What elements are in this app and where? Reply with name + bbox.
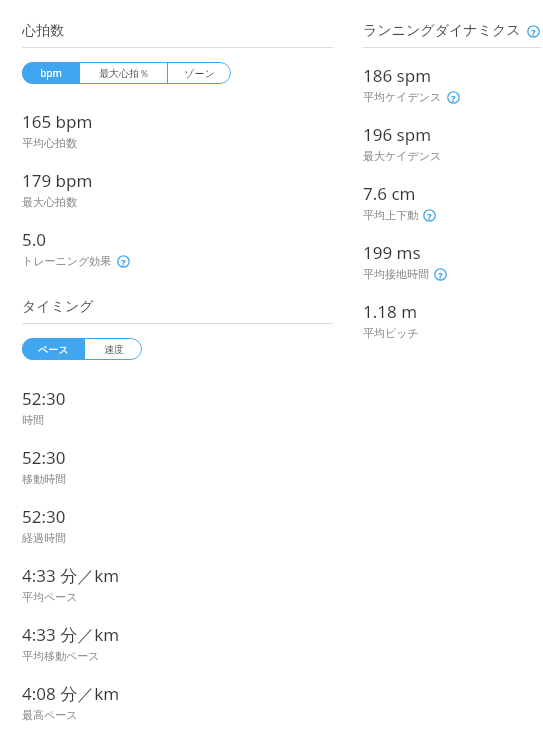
staticText: 平均心拍数 xyxy=(22,136,77,150)
staticText: 平均上下動 xyxy=(363,208,418,222)
staticText: 199 ms xyxy=(363,241,421,264)
staticText: bpm xyxy=(40,66,62,80)
staticText: 平均ケイデンス xyxy=(363,90,442,104)
staticText: タイミング xyxy=(22,298,94,316)
staticText: 1.18 m xyxy=(363,300,418,323)
staticText: 時間 xyxy=(22,413,44,427)
button[interactable]: ヘルプ: 平均上下動 xyxy=(423,209,436,222)
staticText: ? xyxy=(427,210,432,222)
button[interactable]: ペース xyxy=(22,338,85,360)
button[interactable]: 速度 xyxy=(85,338,142,360)
staticText: 4:08 分／km xyxy=(22,682,120,705)
staticText: 最大心拍数 xyxy=(22,195,77,209)
staticText: 平均接地時間 xyxy=(363,267,429,281)
button[interactable]: ゾーン xyxy=(168,62,231,84)
staticText: 186 spm xyxy=(363,64,432,87)
staticText: 経過時間 xyxy=(22,531,66,545)
staticText: 最大心拍％ xyxy=(99,67,149,80)
staticText: 196 spm xyxy=(363,123,432,146)
staticText: トレーニング効果 xyxy=(22,254,112,268)
staticText: 52:30 xyxy=(22,446,66,469)
staticText: 4:33 分／km xyxy=(22,623,120,646)
staticText: 52:30 xyxy=(22,387,66,410)
staticText: ペース xyxy=(38,343,69,356)
staticText: 4:33 分／km xyxy=(22,564,120,587)
staticText: 165 bpm xyxy=(22,110,93,133)
staticText: 移動時間 xyxy=(22,472,66,486)
staticText: ゾーン xyxy=(184,67,215,80)
staticText: 平均ペース xyxy=(22,590,78,604)
staticText: ? xyxy=(531,26,536,38)
staticText: 平均移動ペース xyxy=(22,649,100,663)
staticText: 最高ペース xyxy=(22,708,78,722)
button[interactable]: bpm xyxy=(22,62,80,84)
button[interactable]: ヘルプ: 平均接地時間 xyxy=(434,268,447,281)
button[interactable]: 最大心拍％ xyxy=(80,62,168,84)
staticText: 平均ピッチ xyxy=(363,326,419,340)
staticText: 7.6 cm xyxy=(363,182,416,205)
button[interactable]: ヘルプ: 平均ケイデンス xyxy=(447,91,460,104)
staticText: 179 bpm xyxy=(22,169,93,192)
staticText: 5.0 xyxy=(22,228,47,251)
button[interactable]: ヘルプ xyxy=(527,25,540,38)
staticText: ? xyxy=(438,269,443,281)
staticText: 心拍数 xyxy=(22,22,64,40)
staticText: ランニングダイナミクス xyxy=(363,22,521,40)
staticText: 52:30 xyxy=(22,505,66,528)
button[interactable]: ヘルプ: トレーニング効果 xyxy=(117,255,130,268)
staticText: 速度 xyxy=(104,343,124,356)
staticText: ? xyxy=(451,92,456,104)
staticText: 最大ケイデンス xyxy=(363,149,442,163)
staticText: ? xyxy=(121,256,126,268)
